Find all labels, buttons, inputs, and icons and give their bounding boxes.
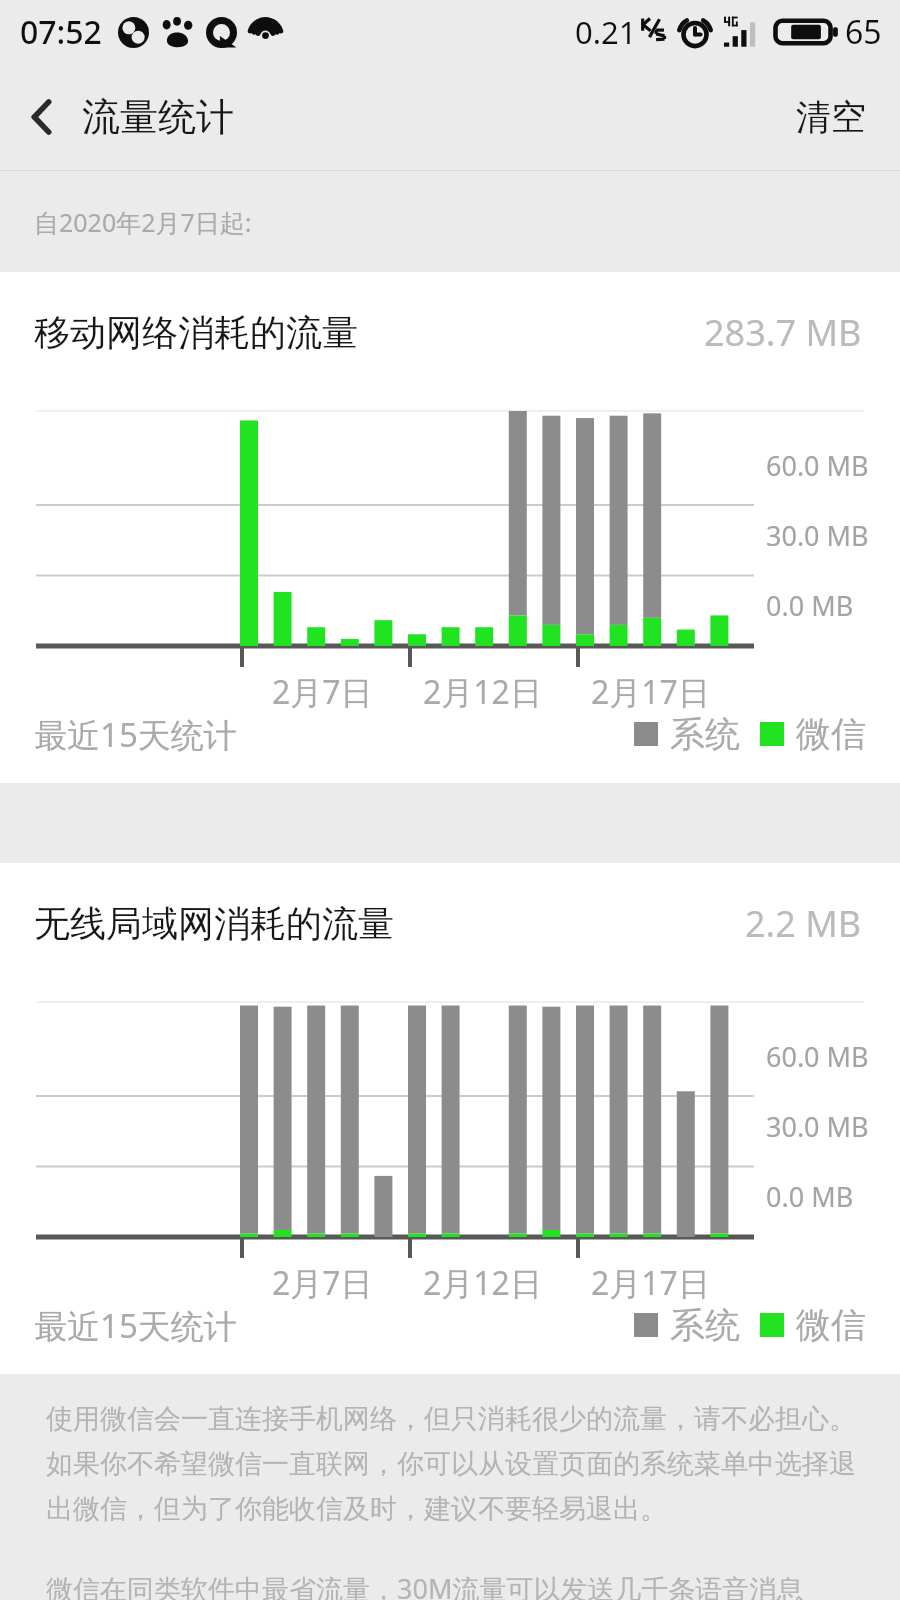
staticText: 2月17日 — [591, 1261, 710, 1305]
button[interactable]: 移动网络消耗的流量 — [0, 272, 900, 783]
staticText: 65 — [845, 10, 882, 54]
staticText: 2月17日 — [591, 670, 710, 714]
staticText: 2月7日 — [272, 1261, 373, 1305]
staticText: 系统 — [670, 712, 740, 756]
staticText: 0.0 MB — [766, 1178, 854, 1215]
staticText: 微信 — [796, 712, 866, 756]
staticText: 2.2 MB — [745, 899, 862, 948]
staticText: 移动网络消耗的流量 — [34, 310, 358, 355]
staticText: 无线局域网消耗的流量 — [34, 901, 394, 946]
staticText: 30.0 MB — [766, 517, 869, 554]
staticText: 07:52 — [20, 10, 102, 54]
staticText: 2月12日 — [423, 1261, 542, 1305]
staticText: 最近15天统计 — [34, 712, 237, 757]
staticText: 最近15天统计 — [34, 1303, 237, 1348]
button[interactable]: 清空 — [762, 75, 900, 159]
staticText: 283.7 MB — [704, 308, 862, 357]
staticText: 系统 — [670, 1303, 740, 1347]
staticText: 60.0 MB — [766, 1038, 869, 1075]
staticText: 0.21 — [575, 11, 637, 53]
staticText: 清空 — [796, 95, 866, 139]
staticText: 微信 — [796, 1303, 866, 1347]
staticText: 自2020年2月7日起: — [34, 205, 252, 239]
staticText: 使用微信会一直连接手机网络，但只消耗很少的流量，请不必担心。如果你不希望微信一直… — [46, 1402, 856, 1526]
staticText: 0.0 MB — [766, 587, 854, 624]
staticText: 流量统计 — [82, 93, 234, 141]
staticText: 2月7日 — [272, 670, 373, 714]
staticText: 60.0 MB — [766, 447, 869, 484]
staticText: 30.0 MB — [766, 1108, 869, 1145]
staticText: 2月12日 — [423, 670, 542, 714]
button[interactable]: Back — [0, 74, 86, 160]
staticText: 微信在同类软件中最省流量，30M流量可以发送几千条语音消息 — [46, 1570, 804, 1600]
button[interactable]: 无线局域网消耗的流量 — [0, 863, 900, 1374]
